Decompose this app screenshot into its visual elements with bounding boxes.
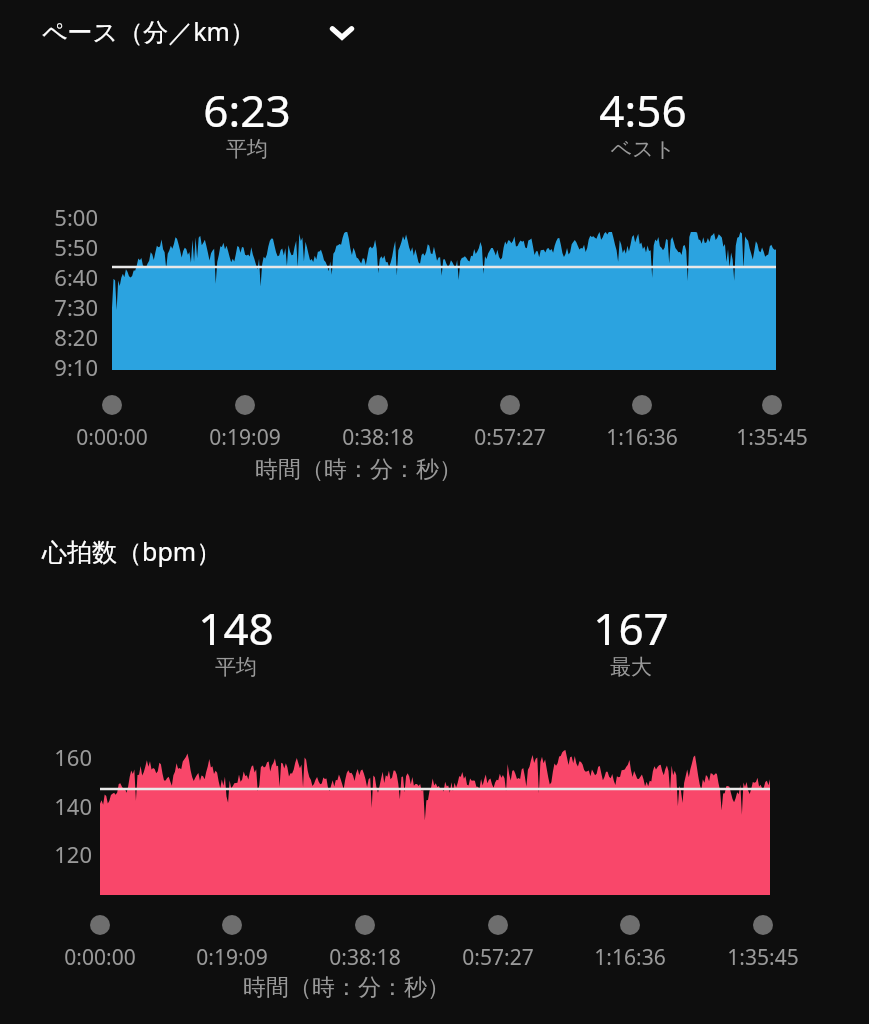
staticText: 0:57:27 (440, 423, 580, 453)
button[interactable] (100, 740, 770, 895)
staticText: 7:30 (8, 292, 98, 322)
button[interactable]: 4:56 (513, 80, 773, 180)
staticText: 5:50 (8, 232, 98, 262)
staticText: 1:35:45 (702, 423, 842, 453)
staticText: 9:10 (8, 352, 98, 382)
staticText: 平均 (117, 136, 377, 166)
button[interactable]: ペース（分／km） (42, 14, 372, 54)
staticText: 最大 (501, 654, 761, 684)
staticText: 時間（時：分：秒） (243, 973, 450, 1002)
button[interactable]: 心拍数（bpm） (42, 534, 302, 574)
button[interactable] (112, 232, 776, 370)
staticText: 0:00:00 (42, 423, 182, 453)
staticText: 1:35:45 (693, 943, 833, 973)
button[interactable]: Change pace metric (322, 12, 362, 52)
staticText: 8:20 (8, 322, 98, 352)
staticText: 平均 (106, 654, 366, 684)
staticText: 140 (2, 791, 92, 821)
button[interactable]: 167 (501, 598, 761, 698)
staticText: 0:19:09 (175, 423, 315, 453)
staticText: 148 (106, 598, 366, 654)
staticText: 0:00:00 (30, 943, 170, 973)
staticText: ペース（分／km） (42, 14, 255, 48)
staticText: 160 (2, 742, 92, 772)
button[interactable]: 148 (106, 598, 366, 698)
button[interactable]: 6:23 (117, 80, 377, 180)
staticText: 0:57:27 (428, 943, 568, 973)
staticText: 時間（時：分：秒） (255, 455, 462, 484)
staticText: 4:56 (513, 80, 773, 136)
staticText: 1:16:36 (572, 423, 712, 453)
staticText: ベスト (513, 136, 773, 166)
staticText: 0:19:09 (162, 943, 302, 973)
staticText: 167 (501, 598, 761, 654)
staticText: 1:16:36 (560, 943, 700, 973)
staticText: 0:38:18 (308, 423, 448, 453)
staticText: 120 (2, 839, 92, 869)
staticText: 0:38:18 (295, 943, 435, 973)
staticText: 心拍数（bpm） (42, 534, 222, 568)
staticText: 6:23 (117, 80, 377, 136)
staticText: 6:40 (8, 262, 98, 292)
staticText: 5:00 (8, 202, 98, 232)
